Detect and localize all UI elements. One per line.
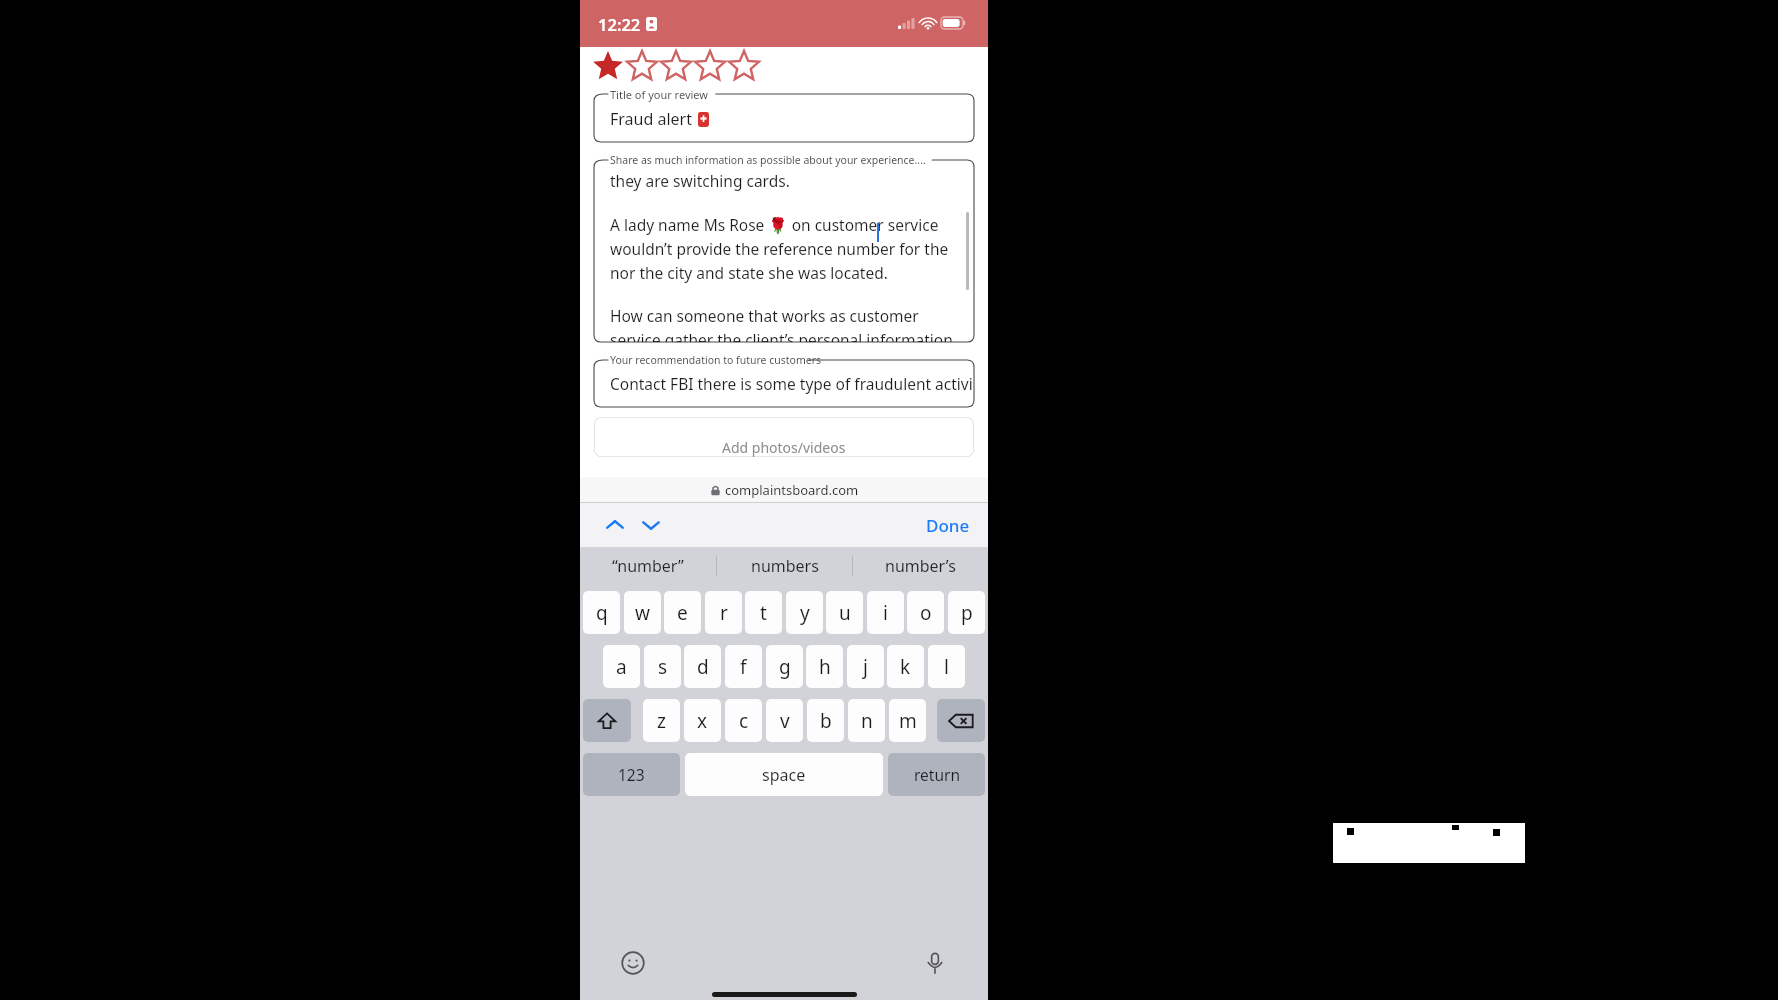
button[interactable]: j xyxy=(847,645,884,688)
staticText: g xyxy=(779,654,791,680)
staticText: v xyxy=(780,708,790,734)
staticText: a xyxy=(616,654,627,680)
button[interactable]: n xyxy=(848,699,885,742)
button[interactable]: g xyxy=(766,645,803,688)
button[interactable]: l xyxy=(928,645,965,688)
staticText: nor the city and state she was located. xyxy=(610,262,888,283)
button[interactable]: Your recommendation to future customers xyxy=(594,352,974,407)
staticText: z xyxy=(657,708,666,734)
staticText: How can someone that works as customer xyxy=(610,305,919,326)
button[interactable]: h xyxy=(806,645,843,688)
button[interactable]: Emoji keyboard xyxy=(616,946,650,980)
staticText: s xyxy=(658,654,668,680)
button[interactable]: z xyxy=(643,699,680,742)
button[interactable]: b xyxy=(807,699,844,742)
button[interactable]: d xyxy=(684,645,721,688)
button[interactable]: Previous field xyxy=(600,510,630,540)
staticText: c xyxy=(739,708,749,734)
button[interactable]: Rate 5 stars xyxy=(728,50,760,82)
staticText: “number” xyxy=(612,555,684,577)
staticText: return xyxy=(914,764,960,785)
button[interactable]: “number” xyxy=(580,547,716,585)
button[interactable]: numbers xyxy=(717,547,852,585)
staticText: numbers xyxy=(751,555,819,577)
staticText: number’s xyxy=(885,555,956,577)
button[interactable]: Next field xyxy=(636,510,666,540)
staticText: l xyxy=(944,654,949,680)
staticText: d xyxy=(697,654,709,680)
staticText: w xyxy=(635,600,650,626)
staticText: f xyxy=(740,654,747,680)
staticText: Done xyxy=(926,514,970,537)
staticText: A lady name Ms Rose 🌹 on customer servic… xyxy=(610,214,939,235)
staticText: m xyxy=(899,708,917,734)
staticText: Share as much information as possible ab… xyxy=(610,153,926,167)
button[interactable]: r xyxy=(705,591,742,634)
staticText: Title of your review xyxy=(610,87,708,102)
button[interactable]: return xyxy=(888,753,985,796)
staticText: t xyxy=(760,600,767,626)
staticText: k xyxy=(900,654,911,680)
staticText: Add photos/videos xyxy=(722,438,846,457)
button[interactable]: Dictation xyxy=(918,946,952,980)
staticText: x xyxy=(697,708,708,734)
staticText: p xyxy=(961,600,973,626)
staticText: space xyxy=(762,764,806,786)
button[interactable]: u xyxy=(826,591,863,634)
button[interactable]: Backspace xyxy=(937,699,985,742)
button[interactable]: Rate 1 stars xyxy=(592,50,624,82)
button[interactable]: e xyxy=(664,591,701,634)
staticText: Your recommendation to future customers xyxy=(610,353,822,367)
staticText: 123 xyxy=(618,764,645,785)
button[interactable]: Share as much information as possible ab… xyxy=(594,152,974,342)
button[interactable]: w xyxy=(624,591,661,634)
button[interactable]: f xyxy=(725,645,762,688)
button[interactable]: 123 xyxy=(583,753,680,796)
button[interactable]: a xyxy=(603,645,640,688)
staticText: Contact FBI there is some type of fraudu… xyxy=(610,373,973,394)
button[interactable]: Add photos/videos xyxy=(594,417,974,457)
button[interactable]: y xyxy=(786,591,823,634)
staticText: they are switching cards. xyxy=(610,170,790,191)
staticText: q xyxy=(596,600,608,626)
button[interactable]: x xyxy=(684,699,721,742)
staticText: j xyxy=(863,654,868,680)
staticText: Fraud alert xyxy=(610,108,692,130)
staticText: u xyxy=(839,600,851,626)
staticText: r xyxy=(720,600,728,626)
staticText: service gather the client’s personal inf… xyxy=(610,329,953,342)
button[interactable]: m xyxy=(889,699,926,742)
staticText: complaintsboard.com xyxy=(725,481,859,499)
button[interactable]: k xyxy=(887,645,924,688)
staticText: h xyxy=(819,654,831,680)
button[interactable]: Rate 4 stars xyxy=(694,50,726,82)
button[interactable]: o xyxy=(907,591,944,634)
button[interactable]: space xyxy=(685,753,883,796)
button[interactable]: Rate 2 stars xyxy=(626,50,658,82)
staticText: 12:22 xyxy=(598,13,641,35)
button[interactable]: q xyxy=(583,591,620,634)
button[interactable]: s xyxy=(644,645,681,688)
staticText: b xyxy=(820,708,832,734)
staticText: wouldn’t provide the reference number fo… xyxy=(610,238,958,259)
button[interactable]: Title of your review xyxy=(594,86,974,142)
button[interactable]: number’s xyxy=(853,547,988,585)
button[interactable]: i xyxy=(867,591,904,634)
button[interactable]: Done xyxy=(926,514,970,537)
button[interactable]: v xyxy=(766,699,803,742)
button[interactable]: t xyxy=(745,591,782,634)
staticText: y xyxy=(800,600,810,626)
button[interactable]: c xyxy=(725,699,762,742)
button[interactable]: Rate 3 stars xyxy=(660,50,692,82)
staticText: e xyxy=(677,600,688,626)
staticText: o xyxy=(920,600,932,626)
button[interactable]: Shift xyxy=(583,699,631,742)
button[interactable]: p xyxy=(948,591,985,634)
staticText: n xyxy=(861,708,873,734)
staticText: i xyxy=(883,600,888,626)
